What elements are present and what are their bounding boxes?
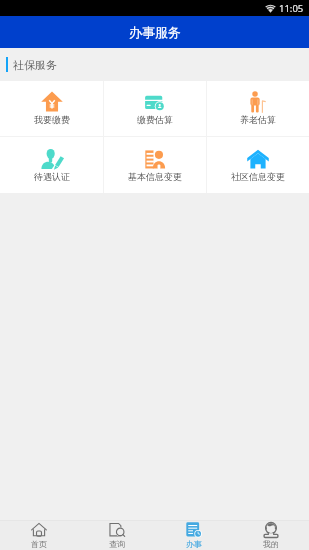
staticText: 社保服务 xyxy=(13,58,57,72)
button[interactable]: Profile xyxy=(232,521,309,550)
staticText: 我的 xyxy=(263,539,279,549)
staticText: 办事 xyxy=(186,539,202,549)
button[interactable]: 社区信息变更 xyxy=(207,137,309,193)
button[interactable]: Search xyxy=(78,521,155,550)
button[interactable]: Home xyxy=(0,521,78,550)
button[interactable]: 基本信息变更 xyxy=(104,137,206,193)
staticText: 我要缴费 xyxy=(34,114,70,125)
staticText: 基本信息变更 xyxy=(128,171,182,182)
staticText: 首页 xyxy=(31,539,47,549)
staticText: 养老估算 xyxy=(240,114,276,125)
staticText: 办事服务 xyxy=(129,24,181,40)
staticText: 查询 xyxy=(109,539,125,549)
button[interactable]: 我要缴费 xyxy=(0,81,103,136)
staticText: 待遇认证 xyxy=(34,171,70,182)
staticText: 缴费估算 xyxy=(137,114,173,125)
button[interactable]: 养老估算 xyxy=(207,81,309,136)
staticText: 社区信息变更 xyxy=(231,171,285,182)
button[interactable]: 待遇认证 xyxy=(0,137,103,193)
staticText: 11:05 xyxy=(279,2,304,15)
button[interactable]: Services xyxy=(155,521,232,550)
button[interactable]: 缴费估算 xyxy=(104,81,206,136)
